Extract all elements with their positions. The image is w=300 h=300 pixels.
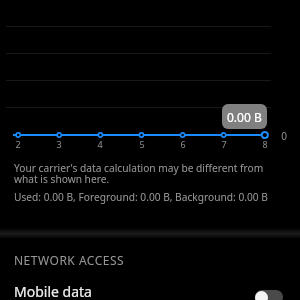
staticText: 7	[214, 138, 234, 150]
staticText: Your carrier's data calculation may be d…	[14, 161, 264, 186]
button[interactable]: 0.00 B	[222, 104, 267, 129]
button[interactable]: Mobile data toggle	[255, 290, 283, 300]
staticText: 5	[132, 138, 152, 150]
staticText: 2	[8, 138, 28, 150]
staticText: 6	[173, 138, 193, 150]
staticText: 8	[255, 138, 275, 150]
button[interactable]: Mobile data	[0, 282, 300, 300]
staticText: 4	[90, 138, 110, 150]
staticText: 0	[277, 129, 291, 143]
staticText: Used: 0.00 B, Foreground: 0.00 B, Backgr…	[14, 190, 268, 204]
staticText: Mobile data	[14, 282, 92, 300]
staticText: NETWORK ACCESS	[14, 252, 125, 268]
staticText: 0.00 B	[227, 109, 262, 125]
staticText: 3	[49, 138, 69, 150]
